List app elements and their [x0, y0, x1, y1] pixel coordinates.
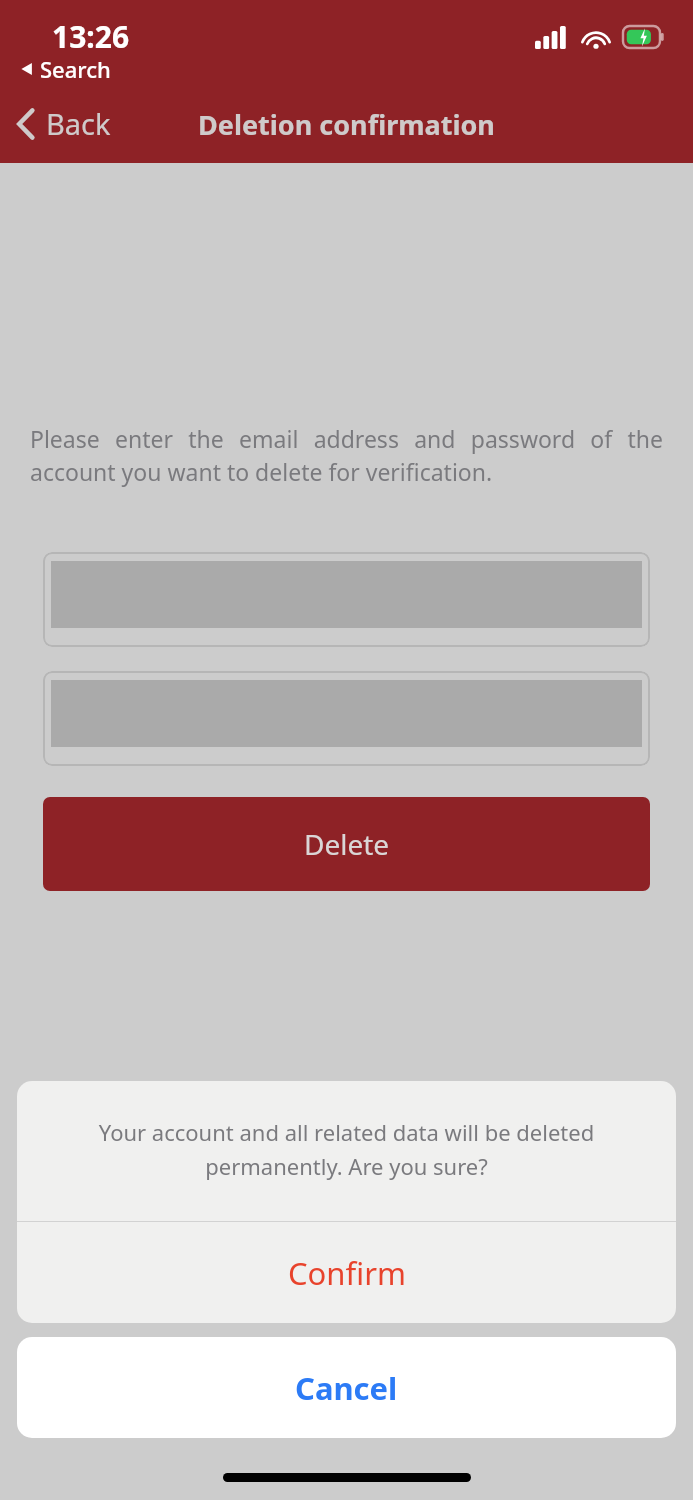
staticText: Back [46, 104, 111, 143]
button[interactable]: Back [8, 100, 119, 147]
button[interactable]: Search [20, 54, 111, 84]
button[interactable] [43, 552, 650, 647]
staticText: Please enter the email address and passw… [30, 423, 663, 488]
button[interactable]: Delete [43, 797, 650, 891]
staticText: 13:26 [52, 16, 130, 57]
staticText: Cancel [295, 1367, 398, 1409]
staticText: Delete [304, 825, 390, 863]
staticText: Your account and all related data will b… [89, 1117, 604, 1181]
staticText: Deletion confirmation [198, 106, 495, 143]
button[interactable]: Cancel [17, 1337, 676, 1438]
button[interactable]: Confirm [17, 1222, 676, 1323]
button[interactable] [43, 671, 650, 766]
staticText: Confirm [288, 1252, 406, 1294]
staticText: Search [40, 54, 111, 84]
